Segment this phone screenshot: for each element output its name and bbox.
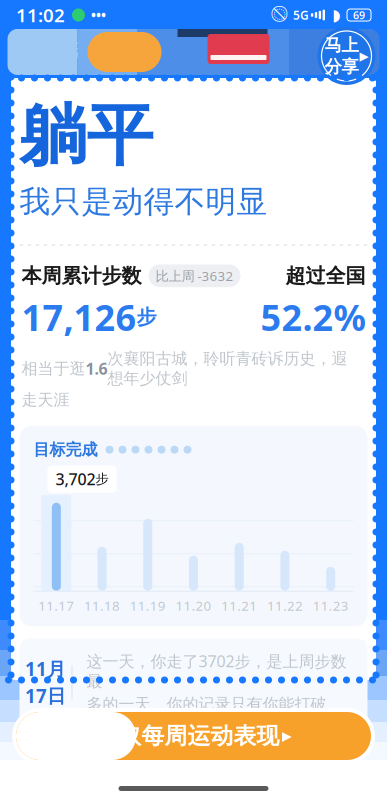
button[interactable]: 更多	[292, 37, 334, 67]
staticText: ‹	[24, 25, 35, 78]
staticText: 11.22	[267, 597, 303, 614]
staticText: 1.6	[85, 358, 107, 379]
staticText: 相当于逛	[21, 359, 85, 378]
staticText: ⃠	[273, 7, 286, 23]
staticText: ◗	[332, 6, 340, 24]
staticText: 5G	[293, 7, 309, 23]
staticText: 走天涯	[21, 390, 69, 410]
staticText: 比上周 -3632	[155, 267, 233, 285]
staticText: 本周累计步数	[21, 263, 141, 288]
button[interactable]: 关闭	[335, 37, 375, 67]
button[interactable]: 获取每周运动表现	[0, 708, 387, 764]
staticText: 步	[136, 305, 156, 329]
staticText: 马上	[324, 35, 358, 56]
staticText: •••	[91, 6, 106, 24]
staticText: 步	[95, 471, 108, 487]
staticText: 11.20	[175, 597, 211, 614]
staticText: •••	[302, 40, 323, 63]
staticText: 运动周报	[48, 36, 148, 67]
staticText: 获取每周运动表现	[95, 722, 279, 750]
staticText: 11.21	[221, 597, 257, 614]
staticText: 11月	[25, 656, 66, 681]
staticText: ▶	[281, 728, 291, 743]
staticText: 11.18	[84, 597, 120, 614]
staticText: 11.19	[130, 597, 166, 614]
staticText: 超过全国	[285, 263, 365, 288]
staticText: 3,702	[55, 468, 95, 490]
staticText: 11:02	[16, 3, 65, 27]
button[interactable]: 马上分享	[317, 27, 375, 85]
staticText: 17日	[25, 683, 66, 708]
staticText: 目标完成	[33, 440, 97, 460]
staticText: 17,126	[21, 293, 136, 341]
staticText: 11.23	[313, 597, 349, 614]
staticText: 次襄阳古城，聆听青砖诉历史，遐想年少仗剑	[107, 349, 347, 388]
staticText: 躺平	[19, 95, 153, 177]
staticText: 我只是动得不明显	[19, 183, 267, 221]
staticText: 分享	[324, 56, 358, 77]
staticText: 多的一天。你的记录只有你能打破	[86, 694, 326, 714]
staticText: 11.17	[38, 597, 74, 614]
staticText: 这一天，你走了3702步，是上周步数最	[86, 650, 346, 691]
staticText: 52.2%	[260, 293, 365, 341]
staticText: ▶	[359, 49, 368, 63]
staticText: 69	[353, 8, 365, 22]
